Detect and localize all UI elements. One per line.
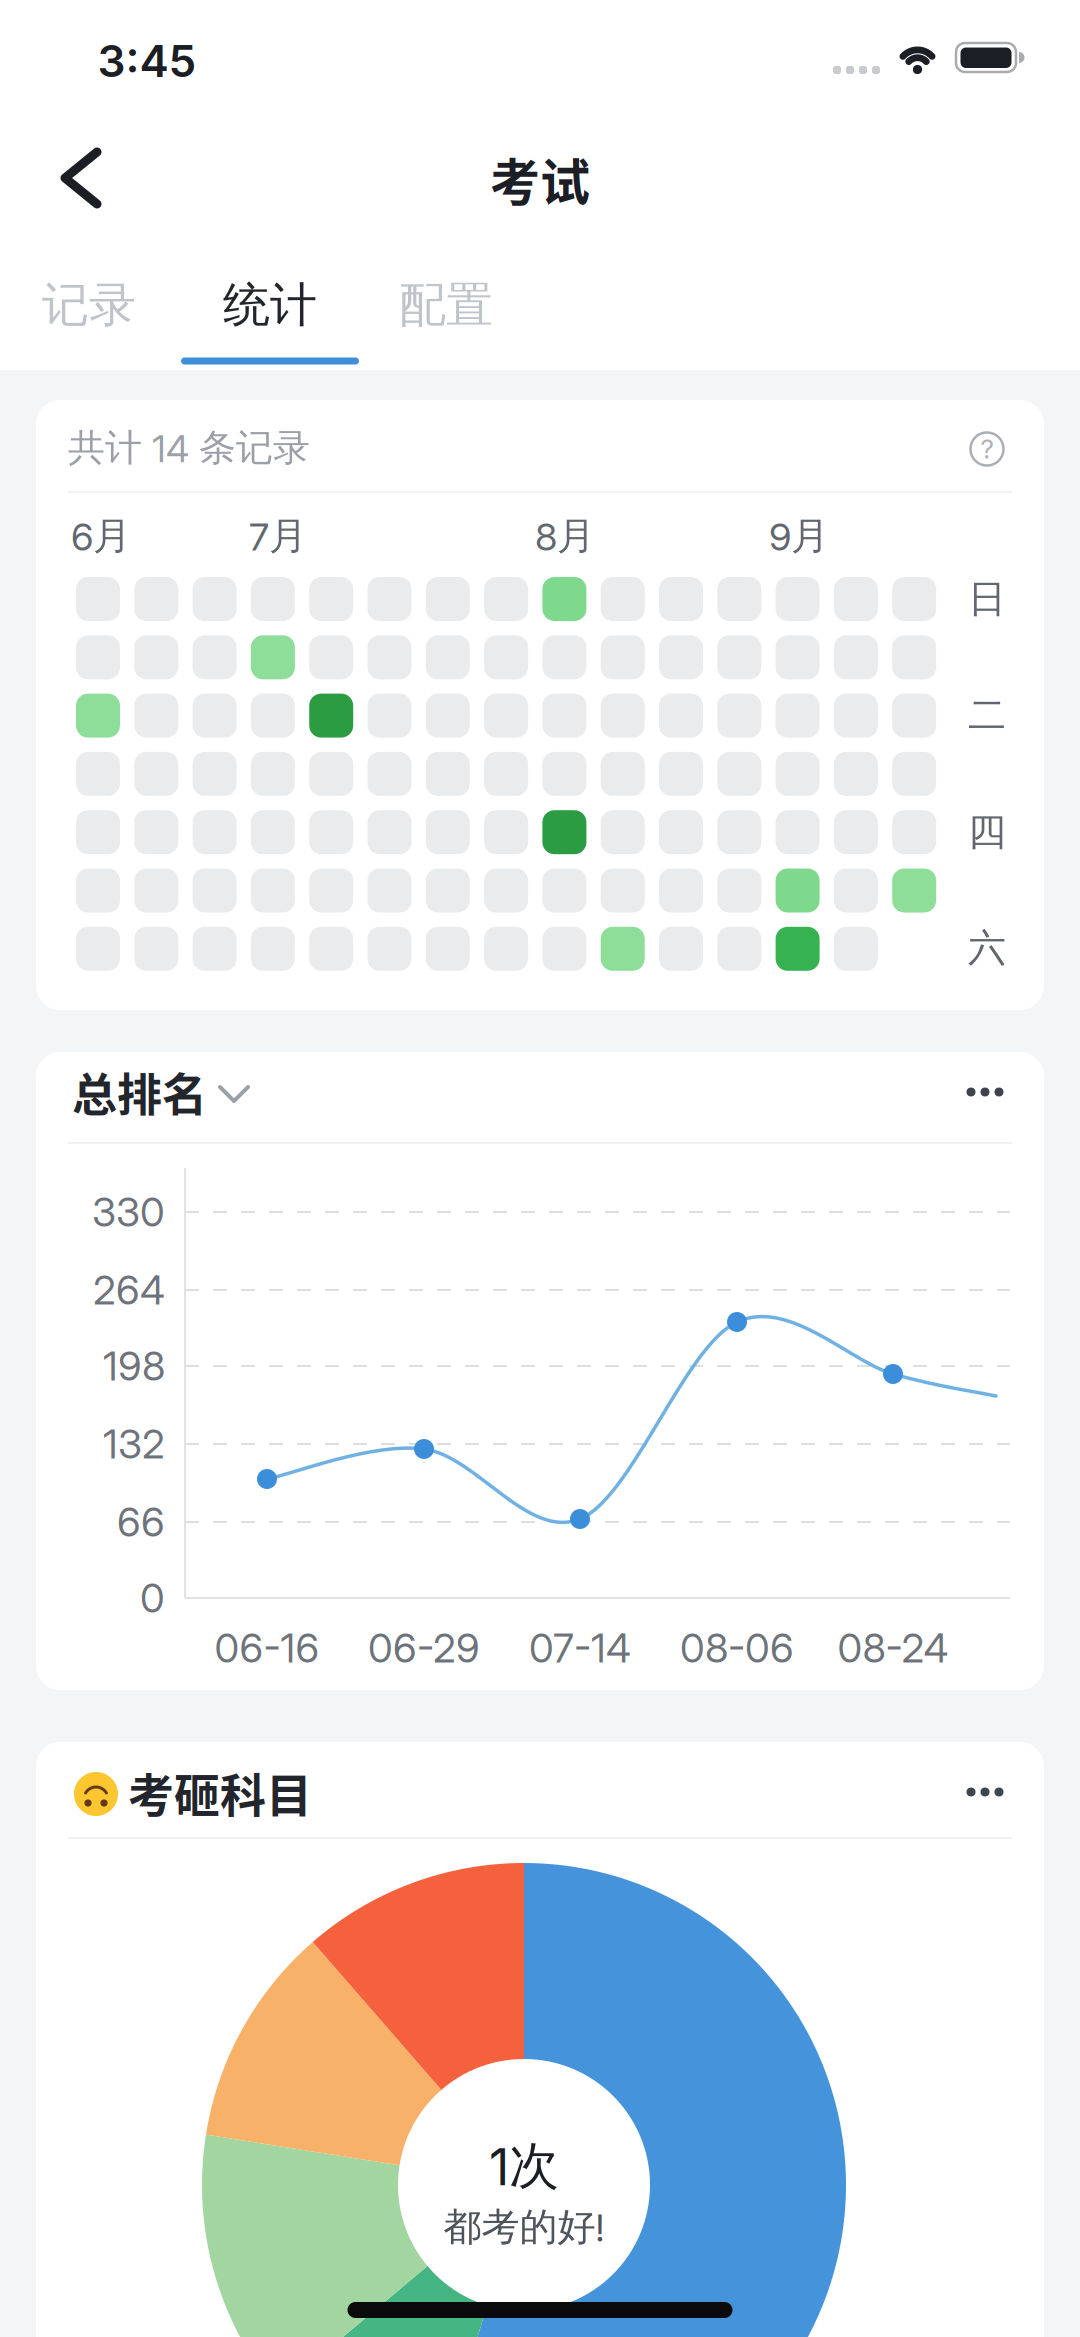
staticText: 06-16 (214, 1619, 319, 1677)
button[interactable]: 记录 (4, 260, 174, 350)
staticText: 配置 (399, 270, 493, 340)
staticText: 06-29 (368, 1619, 480, 1677)
staticText: 7月 (249, 507, 307, 564)
staticText: 共计 14 条记录 (68, 420, 310, 476)
staticText: 考试 (490, 136, 590, 222)
staticText: 0 (140, 1569, 165, 1627)
staticText: 考砸科目 (128, 1752, 312, 1832)
button[interactable]: More options (961, 1067, 1009, 1117)
staticText: 264 (93, 1261, 165, 1319)
staticText: ? (980, 430, 993, 468)
staticText: 08-06 (680, 1619, 794, 1677)
staticText: 日 (968, 570, 1006, 627)
staticText: 8月 (535, 507, 595, 564)
button[interactable]: 总排名 (70, 1062, 280, 1122)
button[interactable]: More options (961, 1767, 1009, 1817)
button[interactable]: 配置 (361, 260, 531, 350)
staticText: 66 (117, 1493, 165, 1551)
staticText: 08-24 (837, 1619, 948, 1677)
button[interactable]: Back (41, 133, 121, 223)
staticText: 都考的好! (443, 2198, 604, 2255)
button[interactable]: 统计 (185, 250, 355, 370)
staticText: 9月 (769, 507, 829, 564)
staticText: 统计 (223, 270, 317, 340)
staticText: 四 (968, 803, 1006, 860)
staticText: 330 (92, 1183, 165, 1241)
staticText: 1次 (489, 2128, 559, 2203)
staticText: 132 (103, 1415, 165, 1473)
staticText: 总排名 (72, 1053, 207, 1131)
staticText: 二 (968, 686, 1006, 743)
staticText: 3:45 (97, 29, 196, 93)
staticText: 07-14 (529, 1619, 631, 1677)
staticText: 记录 (42, 270, 136, 340)
staticText: 198 (103, 1337, 165, 1395)
staticText: 6月 (71, 507, 131, 564)
button[interactable]: Help (957, 419, 1017, 479)
staticText: 六 (968, 919, 1006, 976)
